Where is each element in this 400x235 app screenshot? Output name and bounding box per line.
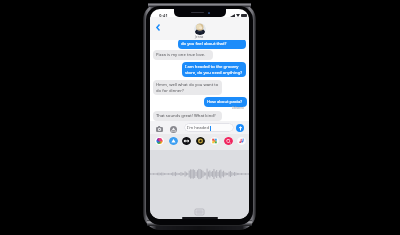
button[interactable]: Back (152, 22, 163, 33)
button[interactable]: Pizza is my one true love. (153, 50, 213, 60)
button[interactable]: App 1 (155, 137, 164, 145)
button[interactable]: Show keyboard (195, 209, 204, 215)
button[interactable]: Hmm, well what do you want to do for din… (153, 80, 222, 95)
staticText: Delivered (232, 106, 244, 110)
button[interactable]: App 2 (169, 137, 178, 145)
button[interactable]: App 7 (237, 137, 246, 145)
staticText: do you feel about that? (181, 41, 227, 47)
button[interactable]: App Store (169, 125, 177, 133)
button[interactable]: Camera (155, 125, 163, 132)
staticText: Jenna (195, 35, 204, 39)
button[interactable]: Send (236, 124, 244, 132)
button[interactable]: App 4 (196, 137, 205, 145)
button[interactable]: do you feel about that? (178, 40, 246, 49)
button[interactable]: That sounds great! What kind? (153, 111, 222, 121)
staticText: Pizza is my one true love. (156, 52, 206, 58)
button[interactable]: App 5 (210, 137, 219, 145)
staticText: Hmm, well what do you want to do for din… (156, 82, 219, 93)
staticText: 9:41 (159, 13, 168, 19)
staticText: I am headed to the grocery store, do you… (185, 64, 243, 75)
button[interactable]: How about pasta? (204, 97, 247, 107)
button[interactable]: I'm headed (184, 123, 234, 132)
button[interactable]: App 6 (224, 137, 233, 145)
button[interactable]: App 3 (182, 137, 191, 145)
staticText: How about pasta? (207, 99, 243, 105)
staticText: I'm headed (187, 125, 210, 131)
button[interactable]: I am headed to the grocery store, do you… (182, 62, 246, 77)
staticText: That sounds great! What kind? (156, 113, 216, 119)
